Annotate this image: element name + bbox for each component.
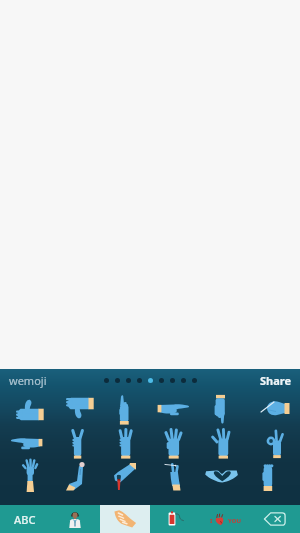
- button[interactable]: Letters: [0, 505, 50, 533]
- button[interactable]: pinching hand: [150, 460, 200, 494]
- button[interactable]: Delete: [250, 505, 300, 533]
- button[interactable]: open hand: [150, 426, 200, 460]
- button[interactable]: ok hand: [250, 426, 300, 460]
- staticText: Share: [260, 373, 292, 388]
- button[interactable]: victory: [50, 426, 100, 460]
- button[interactable]: raised hand: [200, 426, 250, 460]
- staticText: I: [210, 517, 213, 525]
- button[interactable]: point right: [150, 392, 200, 426]
- other: Delete: [263, 510, 287, 528]
- staticText: wemoji: [9, 373, 47, 388]
- button[interactable]: People: [50, 505, 100, 533]
- button[interactable]: heart hands: [200, 460, 250, 494]
- staticText: YOU: [228, 517, 241, 525]
- button[interactable]: point down: [200, 392, 250, 426]
- button[interactable]: fist: [250, 460, 300, 494]
- button[interactable]: thumbs down: [50, 392, 100, 426]
- button[interactable]: Hands: [100, 505, 150, 533]
- button[interactable]: writing hand: [250, 392, 300, 426]
- button[interactable]: index up: [100, 392, 150, 426]
- staticText: ABC: [14, 512, 36, 527]
- button[interactable]: Share: [252, 369, 300, 392]
- button[interactable]: raised arm: [0, 460, 50, 494]
- button[interactable]: thumbs up: [0, 392, 50, 426]
- button[interactable]: point left: [0, 426, 50, 460]
- button[interactable]: hand with tube: [100, 460, 150, 494]
- button[interactable]: I love you: [200, 505, 250, 533]
- button[interactable]: arm holding: [50, 460, 100, 494]
- button[interactable]: three fingers: [100, 426, 150, 460]
- button[interactable]: Medical: [150, 505, 200, 533]
